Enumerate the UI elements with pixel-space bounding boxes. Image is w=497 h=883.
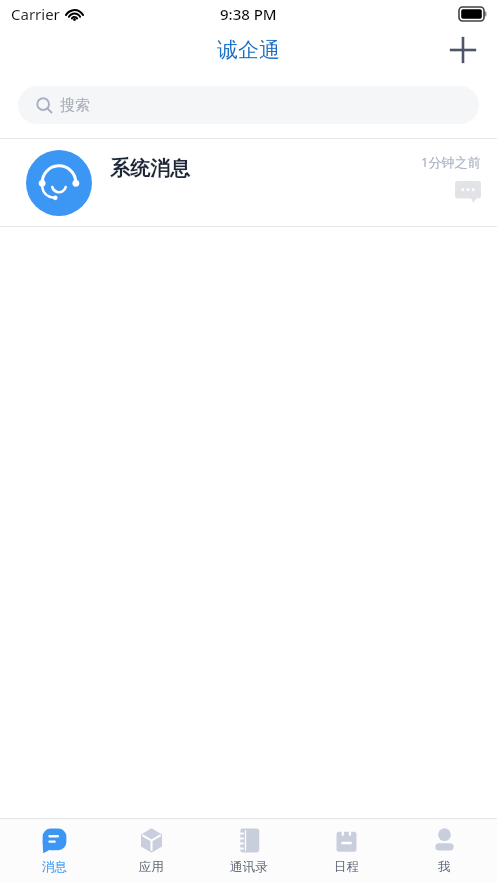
staticText: 搜索: [60, 96, 90, 115]
staticText: 消息: [42, 859, 67, 875]
button[interactable]: 应用: [107, 819, 195, 883]
button[interactable]: 系统消息: [0, 139, 497, 226]
staticText: 9:38 PM: [220, 4, 277, 24]
staticText: 通讯录: [230, 859, 268, 875]
staticText: 我: [438, 859, 451, 875]
button[interactable]: 通讯录: [205, 819, 293, 883]
staticText: 诚企通: [217, 37, 280, 63]
button[interactable]: 搜索: [18, 86, 479, 124]
button[interactable]: Add: [441, 28, 485, 72]
staticText: 日程: [334, 859, 359, 875]
staticText: 系统消息: [110, 156, 190, 181]
button[interactable]: 日程: [302, 819, 390, 883]
staticText: 1分钟之前: [421, 153, 481, 171]
staticText: 应用: [139, 859, 164, 875]
button[interactable]: 我: [400, 819, 488, 883]
button[interactable]: 消息: [10, 819, 98, 883]
staticText: Carrier: [11, 4, 60, 24]
